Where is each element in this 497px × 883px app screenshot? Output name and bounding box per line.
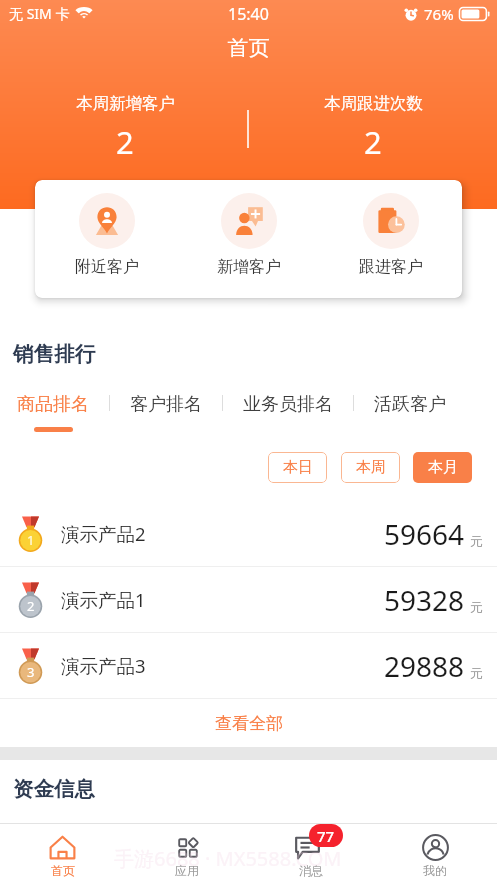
staticText: 2 — [116, 121, 134, 163]
staticText: 59328 — [384, 581, 465, 619]
button[interactable]: 新增客户 — [178, 180, 320, 298]
button[interactable]: 我的 — [373, 830, 497, 878]
staticText: 手游6688 · MX5588.COM — [114, 845, 342, 872]
button[interactable]: 应用 — [125, 830, 249, 878]
staticText: 76% — [424, 4, 454, 24]
button[interactable]: 本月 — [413, 452, 472, 483]
staticText: 演示产品1 — [61, 587, 146, 612]
staticText: 无 SIM 卡 — [9, 4, 70, 23]
button[interactable]: 3 — [0, 633, 497, 698]
staticText: 活跃客户 — [374, 393, 446, 416]
staticText: 元 — [470, 665, 483, 681]
staticText: 跟进客户 — [359, 257, 423, 277]
staticText: 77 — [317, 826, 335, 846]
button[interactable]: 商品排名 — [17, 393, 89, 432]
button[interactable]: 本日 — [268, 452, 327, 483]
button[interactable]: 活跃客户 — [374, 393, 446, 416]
staticText: 29888 — [384, 647, 465, 685]
staticText: 2 — [364, 121, 382, 163]
staticText: 本日 — [283, 458, 313, 477]
staticText: 首页 — [51, 863, 75, 878]
staticText: 元 — [470, 599, 483, 615]
button[interactable]: 本周 — [341, 452, 400, 483]
staticText: 业务员排名 — [243, 393, 333, 416]
staticText: 本周 — [356, 458, 386, 477]
staticText: 本周跟进次数 — [324, 93, 423, 114]
staticText: 首页 — [0, 35, 497, 61]
staticText: 3 — [27, 663, 35, 681]
button[interactable]: 首页 — [0, 830, 125, 878]
button[interactable]: 1 — [0, 501, 497, 566]
button[interactable]: 业务员排名 — [243, 393, 333, 416]
staticText: 查看全部 — [215, 713, 283, 734]
staticText: 销售排行 — [13, 341, 95, 367]
staticText: 演示产品2 — [61, 521, 146, 546]
staticText: 2 — [27, 597, 35, 615]
button[interactable]: 跟进客户 — [320, 180, 462, 298]
staticText: 元 — [470, 533, 483, 549]
staticText: 本月 — [428, 458, 458, 477]
button[interactable]: 2 — [0, 567, 497, 632]
staticText: 客户排名 — [130, 393, 202, 416]
staticText: 商品排名 — [17, 393, 89, 416]
staticText: 附近客户 — [75, 257, 139, 277]
staticText: 15:40 — [228, 3, 269, 25]
staticText: 新增客户 — [217, 257, 281, 277]
button[interactable]: 客户排名 — [130, 393, 202, 416]
button[interactable]: 查看全部 — [0, 699, 497, 747]
staticText: 资金信息 — [13, 776, 95, 802]
staticText: 我的 — [423, 863, 447, 878]
staticText: 1 — [27, 531, 35, 549]
staticText: 消息 — [299, 863, 323, 878]
button[interactable]: 附近客户 — [35, 180, 178, 298]
staticText: 本周新增客户 — [76, 93, 175, 114]
staticText: 应用 — [175, 863, 199, 878]
staticText: 59664 — [384, 515, 465, 553]
button[interactable]: 77 — [249, 830, 373, 878]
staticText: 演示产品3 — [61, 653, 146, 678]
